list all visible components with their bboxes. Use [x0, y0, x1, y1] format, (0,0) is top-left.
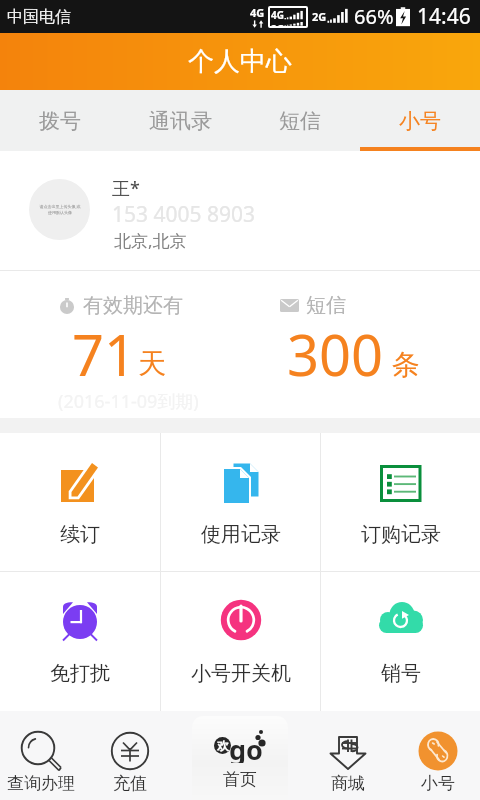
staticText: 短信	[279, 108, 321, 134]
button[interactable]: 续订	[0, 433, 160, 571]
button[interactable]: 通讯录	[120, 90, 240, 151]
staticText: 销号	[381, 661, 421, 686]
staticText: 欢	[217, 738, 229, 753]
staticText: 个人中心	[188, 45, 292, 78]
staticText: 条	[392, 347, 420, 382]
staticText: 14:46	[417, 2, 471, 31]
staticText: go	[229, 731, 263, 763]
staticText: 有效期还有	[83, 293, 183, 318]
staticText: 小号开关机	[191, 661, 291, 686]
button[interactable]: 欢	[192, 716, 288, 800]
staticText: 短信	[306, 293, 346, 318]
staticText: (2016-11-09到期)	[58, 389, 199, 414]
staticText: 300	[287, 316, 384, 392]
button[interactable]: 请点击这里上传头像,或 使用默认头像	[0, 151, 480, 270]
staticText: 中国电信	[7, 7, 71, 27]
button[interactable]: 小号	[360, 90, 480, 151]
button[interactable]: 销号	[321, 572, 480, 711]
staticText: 4G	[250, 5, 265, 20]
staticText: 商城	[331, 773, 365, 794]
staticText: 订购记录	[361, 522, 441, 547]
staticText: 2G	[312, 9, 327, 24]
staticText: 使用记录	[201, 522, 281, 547]
button[interactable]: 免打扰	[0, 572, 160, 711]
staticText: 王*	[112, 176, 140, 201]
staticText: 首页	[223, 769, 257, 790]
staticText: 小号	[399, 108, 441, 134]
staticText: 查询办理	[7, 773, 75, 794]
button[interactable]: 拨号	[0, 90, 120, 151]
button[interactable]: Mall	[308, 711, 388, 800]
staticText: 免打扰	[50, 661, 110, 686]
staticText: 天	[138, 346, 166, 381]
staticText: 拨号	[39, 108, 81, 134]
staticText: 71	[72, 316, 137, 392]
staticText: 66%	[354, 3, 394, 30]
button[interactable]: 小号开关机	[161, 572, 320, 711]
button[interactable]: Search	[1, 711, 81, 800]
staticText: 小号	[421, 773, 455, 794]
staticText: 请点击这里上传头像,或 使用默认头像	[39, 204, 81, 216]
button[interactable]: Recharge	[90, 711, 170, 800]
staticText: 通讯录	[149, 108, 212, 134]
staticText: 北京,北京	[114, 229, 187, 252]
staticText: 153 4005 8903	[112, 200, 256, 229]
staticText: 充值	[113, 773, 147, 794]
button[interactable]: 订购记录	[321, 433, 480, 571]
button[interactable]: 使用记录	[161, 433, 320, 571]
staticText: 2G	[271, 22, 284, 26]
button[interactable]: Secondary number	[398, 711, 478, 800]
button[interactable]: 短信	[240, 90, 360, 151]
staticText: 续订	[60, 522, 100, 547]
staticText: 4G	[271, 8, 284, 22]
